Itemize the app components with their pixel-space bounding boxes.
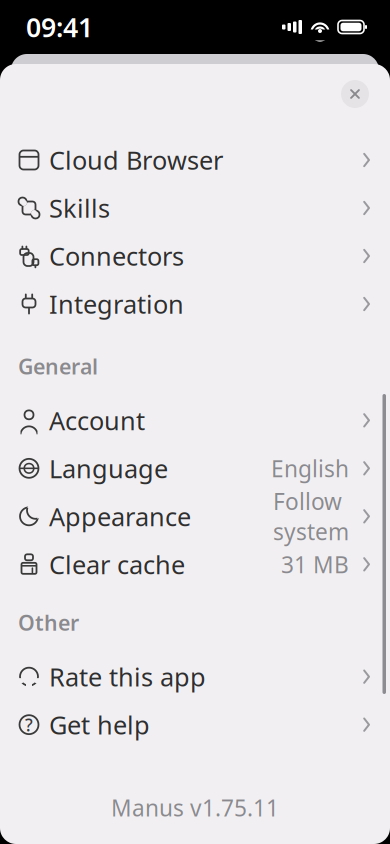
button[interactable]: Close	[335, 74, 375, 114]
staticText: Manus v1.75.11	[111, 793, 279, 823]
button[interactable]: Skills	[0, 184, 390, 232]
staticText: ?	[25, 713, 33, 736]
button[interactable]: Rate this app	[0, 653, 390, 701]
staticText: Get help	[49, 708, 150, 741]
staticText: Rate this app	[49, 660, 206, 693]
button[interactable]: Cloud Browser	[0, 136, 390, 184]
staticText: Follow system	[273, 486, 349, 546]
staticText: Connectors	[49, 239, 184, 273]
button[interactable]: Connectors	[0, 232, 390, 280]
staticText: General	[18, 352, 98, 380]
staticText: Cloud Browser	[49, 143, 223, 177]
staticText: Language	[49, 451, 168, 485]
staticText: Account	[49, 403, 145, 437]
staticText: Skills	[49, 191, 110, 225]
button[interactable]: Account	[0, 396, 390, 444]
button[interactable]: ?	[0, 701, 390, 749]
button[interactable]: Integration	[0, 280, 390, 328]
button[interactable]: Clear cache	[0, 540, 390, 588]
staticText: English	[271, 453, 349, 483]
button[interactable]: Appearance	[0, 492, 390, 540]
staticText: Clear cache	[49, 547, 185, 581]
staticText: Integration	[49, 287, 184, 321]
staticText: 09:41	[26, 9, 93, 45]
staticText: 31 MB	[281, 549, 349, 579]
button[interactable]: Language	[0, 444, 390, 492]
staticText: Appearance	[49, 499, 191, 533]
staticText: Other	[18, 608, 79, 637]
